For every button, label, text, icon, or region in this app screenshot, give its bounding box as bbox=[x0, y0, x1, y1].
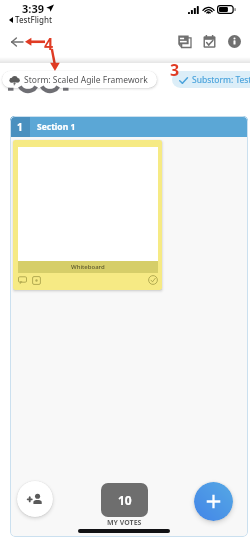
staticText: 3:39 bbox=[22, 1, 44, 16]
staticText: 4 bbox=[44, 33, 54, 55]
button[interactable]: 1 bbox=[10, 116, 248, 137]
button[interactable]: Whiteboard bbox=[13, 140, 162, 290]
staticText: MY VOTES bbox=[107, 518, 142, 528]
button[interactable]: 10 bbox=[101, 483, 148, 517]
button[interactable]: Back bbox=[5, 30, 29, 54]
staticText: Section 1 bbox=[37, 121, 76, 133]
staticText: 1 bbox=[17, 120, 23, 134]
button[interactable]: Storm: Scaled Agile Framework bbox=[2, 71, 157, 88]
staticText: Storm: Scaled Agile Framework bbox=[24, 74, 148, 86]
staticText: 3 bbox=[170, 59, 180, 81]
staticText: 10 bbox=[118, 492, 132, 508]
button[interactable]: Add idea bbox=[194, 482, 233, 521]
button[interactable]: Info bbox=[222, 29, 246, 53]
staticText: Whiteboard bbox=[71, 263, 105, 271]
button[interactable]: Agenda bbox=[197, 29, 221, 53]
staticText: Substorm: Test bbox=[192, 74, 250, 86]
button[interactable]: Substorm: Test bbox=[172, 71, 250, 88]
button[interactable]: Add participant bbox=[17, 481, 53, 517]
button[interactable]: Chat bbox=[172, 29, 196, 53]
staticText: TestFlight bbox=[15, 14, 53, 25]
